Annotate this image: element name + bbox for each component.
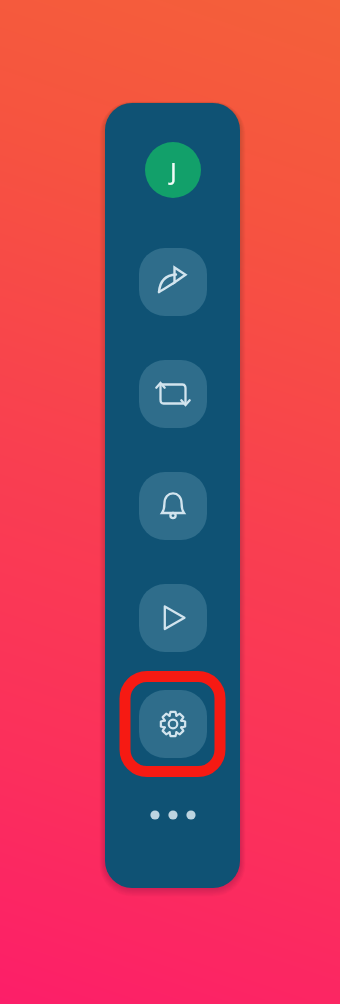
button[interactable]: Repeat [139, 360, 207, 428]
button[interactable]: Share [139, 248, 207, 316]
staticText: J [170, 155, 177, 186]
button[interactable]: Settings [139, 690, 207, 758]
button[interactable]: Play [139, 584, 207, 652]
button[interactable]: More options [145, 799, 201, 831]
button[interactable]: Profile [145, 142, 201, 198]
button[interactable]: Notifications [139, 472, 207, 540]
